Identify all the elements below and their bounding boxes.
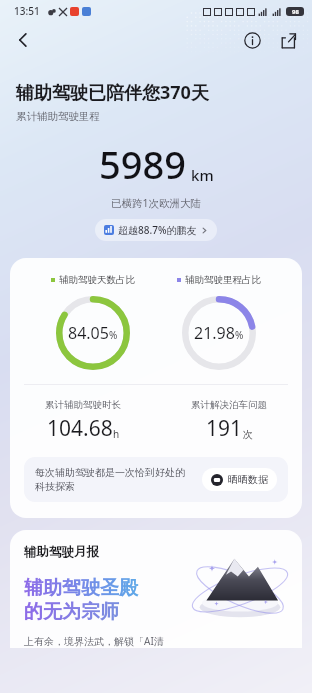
staticText: 191	[206, 414, 243, 443]
staticText: 辅助驾驶已陪伴您370天	[16, 80, 209, 105]
staticText: 辅助驾驶圣殿	[24, 576, 138, 600]
staticText: km	[191, 165, 214, 185]
button[interactable]: Back	[6, 23, 40, 57]
staticText: 21.98	[194, 322, 235, 344]
staticText: 的无为宗师	[24, 600, 119, 624]
staticText: 上有余，境界法武，解锁「AI清	[24, 634, 164, 648]
button[interactable]: 超越88.7%的鹏友	[95, 219, 217, 241]
staticText: 晒晒数据	[228, 473, 268, 486]
staticText: %	[235, 328, 244, 342]
staticText: 累计辅助驾驶里程	[16, 110, 100, 123]
staticText: %	[109, 328, 118, 342]
staticText: 每次辅助驾驶都是一次恰到好处的科技探索	[35, 466, 194, 493]
staticText: 辅助驾驶里程占比	[185, 274, 261, 286]
staticText: 已横跨1次欧洲大陆	[0, 196, 312, 210]
staticText: 累计解决泊车问题	[191, 399, 267, 411]
staticText: 次	[243, 428, 253, 441]
staticText: 超越88.7%的鹏友	[118, 223, 197, 237]
button[interactable]: Info	[236, 24, 268, 56]
staticText: 辅助驾驶月报	[24, 544, 99, 560]
staticText: 5989	[99, 138, 186, 190]
staticText: 累计辅助驾驶时长	[45, 399, 121, 411]
staticText: h	[113, 427, 120, 441]
button[interactable]: Share	[272, 24, 304, 56]
button[interactable]: 晒晒数据	[202, 468, 277, 491]
staticText: 98	[292, 8, 299, 16]
staticText: 辅助驾驶天数占比	[59, 274, 135, 286]
staticText: 84.05	[68, 322, 109, 344]
staticText: 13:51	[14, 4, 40, 18]
button[interactable]: 辅助驾驶月报	[10, 530, 302, 648]
staticText: 104.68	[47, 414, 113, 443]
button[interactable]: 辅助驾驶天数占比	[10, 258, 302, 518]
